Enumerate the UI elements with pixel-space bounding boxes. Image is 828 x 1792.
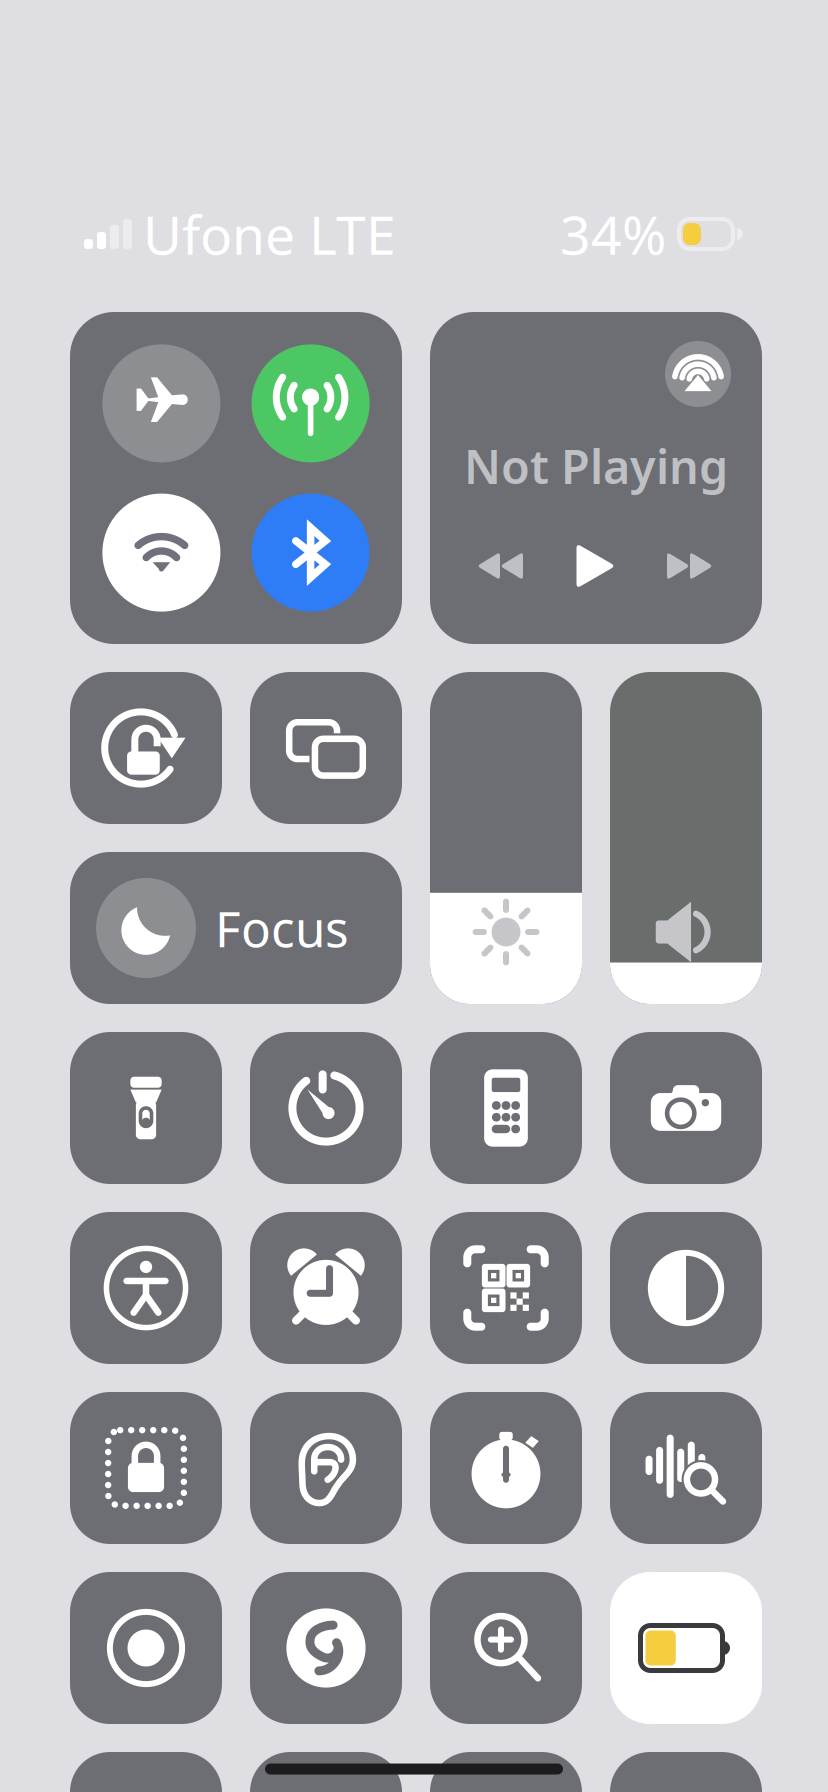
staticText: Focus: [215, 895, 349, 961]
button[interactable]: Hearing: [250, 1392, 402, 1544]
button[interactable]: Airplane Mode: [102, 344, 220, 462]
staticText: 34%: [560, 199, 666, 269]
staticText: Ufone LTE: [143, 199, 396, 269]
button[interactable]: More: [250, 1752, 402, 1792]
button[interactable]: Sound Recognition: [610, 1392, 762, 1544]
button[interactable]: Low Power Mode: [610, 1572, 762, 1724]
button[interactable]: Shazam: [250, 1572, 402, 1724]
button[interactable]: Screen Mirroring: [250, 672, 402, 824]
button[interactable]: Timer: [250, 1032, 402, 1184]
button[interactable]: Stopwatch: [430, 1392, 582, 1544]
button[interactable]: Dark Mode: [610, 1212, 762, 1364]
button[interactable]: Screen Record: [70, 1572, 222, 1724]
button[interactable]: Volume: [610, 672, 762, 1004]
button[interactable]: Accessibility: [70, 1212, 222, 1364]
button[interactable]: Scan Code: [430, 1212, 582, 1364]
button[interactable]: Flashlight: [70, 1032, 222, 1184]
button[interactable]: AirPlay: [665, 341, 731, 407]
button[interactable]: Guided Access: [70, 1392, 222, 1544]
button[interactable]: Previous: [460, 538, 540, 594]
button[interactable]: More: [430, 1752, 582, 1792]
button[interactable]: Rotation Lock: [70, 672, 222, 824]
button[interactable]: Brightness: [430, 672, 582, 1004]
button[interactable]: Next: [650, 538, 730, 594]
button[interactable]: Camera: [610, 1032, 762, 1184]
button[interactable]: Wi-Fi: [102, 494, 220, 612]
button[interactable]: Alarm: [250, 1212, 402, 1364]
button[interactable]: More: [610, 1752, 762, 1792]
button[interactable]: Magnifier: [430, 1572, 582, 1724]
button[interactable]: Focus: [70, 852, 402, 1004]
button[interactable]: More: [70, 1752, 222, 1792]
staticText: Not Playing: [464, 435, 728, 497]
button[interactable]: Cellular Data: [252, 344, 370, 462]
button[interactable]: Bluetooth: [252, 494, 370, 612]
button[interactable]: Calculator: [430, 1032, 582, 1184]
button[interactable]: Play: [563, 533, 629, 599]
